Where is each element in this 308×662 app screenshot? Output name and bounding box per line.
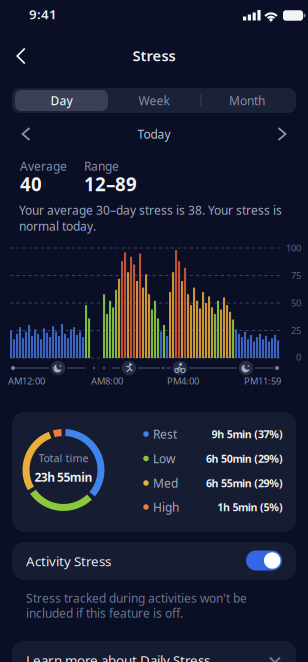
button[interactable]: Activity Stress (246, 550, 282, 570)
staticText: High (153, 499, 179, 515)
staticText: AM8:00 (91, 375, 123, 387)
button[interactable]: Day (15, 90, 108, 111)
staticText: Low (153, 450, 175, 466)
staticText: 6h 55min (29%) (206, 476, 283, 490)
staticText: Today (137, 126, 170, 142)
button[interactable]: Learn more about Daily Stress (12, 641, 296, 662)
staticText: included if this feature is off. (26, 605, 183, 621)
staticText: 100 (286, 242, 301, 254)
staticText: 0 (296, 351, 301, 363)
staticText: 25 (291, 324, 301, 337)
staticText: Day (50, 92, 72, 108)
button[interactable]: Month (200, 90, 293, 111)
staticText: Rest (153, 426, 177, 442)
staticText: AM12:00 (8, 375, 45, 387)
staticText: 9h 5min (37%) (212, 427, 283, 441)
staticText: PM11:59 (244, 375, 281, 387)
staticText: Total time (38, 451, 88, 465)
staticText: Week (138, 92, 169, 108)
staticText: 9:41 (29, 5, 57, 23)
staticText: Average (20, 158, 67, 174)
staticText: 6h 50min (29%) (206, 451, 283, 466)
staticText: 1h 5min (5%) (217, 500, 283, 514)
staticText: Learn more about Daily Stress (26, 651, 210, 662)
staticText: Range (84, 158, 119, 174)
staticText: 12–89 (84, 172, 137, 196)
staticText: Stress (132, 46, 175, 65)
button[interactable]: Previous day (11, 119, 41, 149)
staticText: 50 (291, 297, 301, 309)
button[interactable]: Next day (267, 119, 297, 149)
staticText: Month (229, 92, 265, 108)
staticText: 23h 55min (34, 469, 93, 485)
button[interactable]: Week (107, 90, 200, 111)
button[interactable]: Back (4, 39, 38, 73)
staticText: normal today. (19, 218, 96, 234)
staticText: 40 (20, 172, 42, 196)
staticText: Your average 30–day stress is 38. Your s… (19, 202, 282, 218)
staticText: Med (153, 475, 178, 491)
staticText: Stress tracked during activities won't b… (26, 590, 247, 606)
staticText: Activity Stress (26, 552, 111, 570)
staticText: PM4:00 (167, 375, 199, 387)
staticText: 75 (291, 269, 301, 282)
